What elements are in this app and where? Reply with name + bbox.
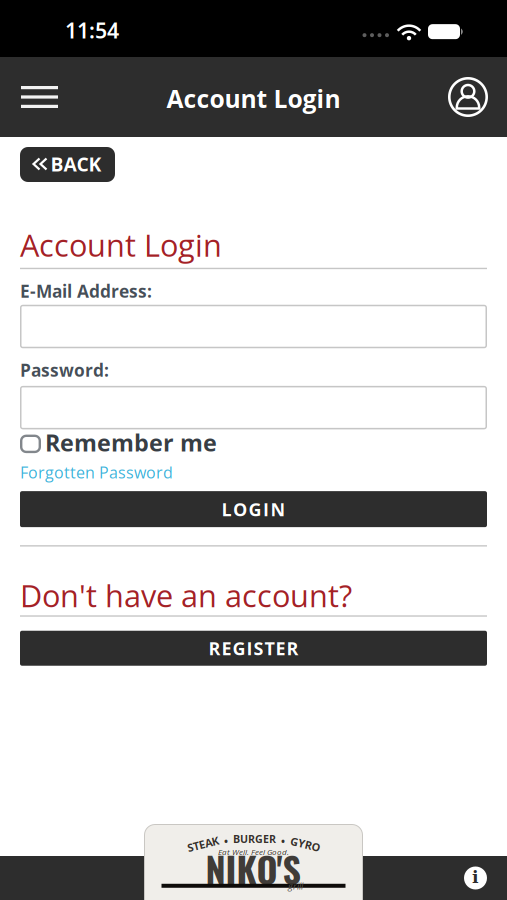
- staticText: Account Login: [20, 224, 222, 266]
- button[interactable]: Back: [20, 147, 115, 182]
- staticText: STEAK: [187, 837, 219, 851]
- staticText: Password:: [20, 358, 109, 382]
- staticText: •: [281, 833, 285, 848]
- staticText: Eat Well. Feel Good.: [218, 846, 289, 857]
- staticText: LOGIN: [221, 497, 285, 521]
- button[interactable]: REGISTER: [20, 631, 487, 666]
- staticText: Don't have an account?: [20, 575, 352, 616]
- button[interactable]: Menu: [0, 74, 58, 120]
- staticText: REGISTER: [208, 636, 298, 660]
- button[interactable]: Remember me: [20, 429, 217, 454]
- staticText: •: [224, 833, 228, 848]
- staticText: NIKO'S: [205, 842, 301, 895]
- staticText: i: [472, 867, 479, 887]
- staticText: BACK: [50, 151, 101, 177]
- staticText: grill: [288, 879, 303, 892]
- staticText: Account Login: [166, 82, 340, 115]
- staticText: 11:54: [65, 16, 119, 44]
- staticText: Remember me: [45, 426, 217, 458]
- button[interactable]: Info: [464, 866, 507, 889]
- button[interactable]: Forgotten Password: [20, 454, 173, 483]
- staticText: E-Mail Address:: [20, 279, 152, 303]
- button[interactable]: Account: [447, 76, 507, 118]
- button[interactable]: Text field: [20, 305, 487, 348]
- button[interactable]: LOGIN: [20, 491, 487, 527]
- staticText: GYRO: [290, 837, 320, 851]
- staticText: Forgotten Password: [20, 461, 173, 483]
- button[interactable]: Text field: [20, 386, 487, 429]
- staticText: BURGER: [233, 831, 276, 846]
